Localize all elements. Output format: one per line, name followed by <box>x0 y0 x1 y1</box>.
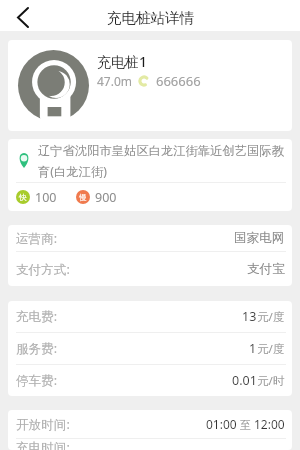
staticText: 至 <box>237 417 254 432</box>
staticText: 13 <box>242 308 257 325</box>
staticText: 充电桩1 <box>97 52 148 71</box>
staticText: 100 <box>35 189 57 206</box>
staticText: 支付方式: <box>16 261 70 278</box>
staticText: 辽宁省沈阳市皇姑区白龙江街靠近创艺国际教育(白龙江街) <box>38 143 287 179</box>
staticText: 12:00 <box>254 416 285 432</box>
staticText: 01:00 <box>206 416 237 432</box>
staticText: 元/时 <box>257 373 285 389</box>
staticText: 停车费: <box>16 372 58 389</box>
button[interactable]: 充电桩1 <box>8 40 292 131</box>
staticText: 服务费: <box>16 340 58 357</box>
staticText: 900 <box>95 189 117 206</box>
staticText: 充电桩站详情 <box>107 9 194 27</box>
staticText: 支付宝 <box>247 261 285 277</box>
staticText: 元/度 <box>257 309 285 325</box>
staticText: 充电费: <box>16 308 58 325</box>
staticText: 开放时间: <box>16 416 70 433</box>
staticText: 1 <box>249 340 257 357</box>
staticText: 元/度 <box>257 341 285 357</box>
button[interactable]: 辽宁省沈阳市皇姑区白龙江街靠近创艺国际教育(白龙江街) <box>8 139 292 182</box>
staticText: 运营商: <box>16 230 58 247</box>
staticText: 国家电网 <box>234 230 285 246</box>
staticText: 快 <box>19 193 27 202</box>
staticText: 慢 <box>79 193 87 202</box>
button[interactable]: Back <box>0 0 44 31</box>
staticText: 47.0m <box>97 73 133 89</box>
staticText: 0.01 <box>232 372 257 389</box>
staticText: 充电时间: <box>16 439 70 450</box>
staticText: 666666 <box>156 72 201 90</box>
